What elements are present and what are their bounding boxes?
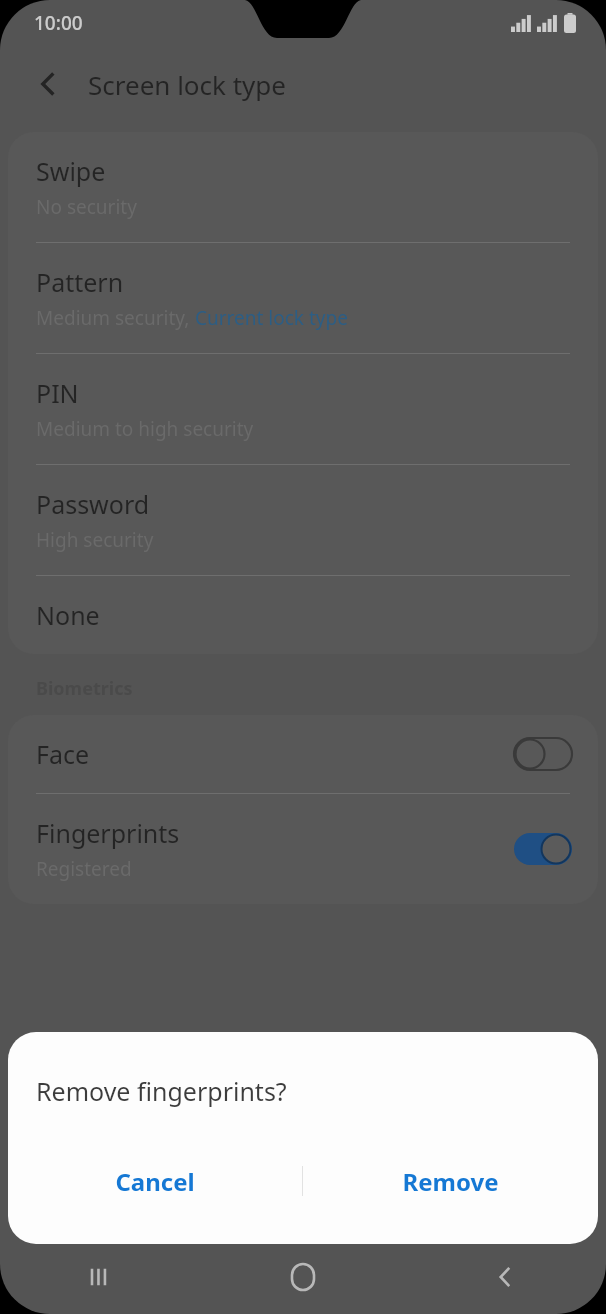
button[interactable]: Toggle on [514, 833, 572, 865]
staticText: Current lock type [195, 305, 348, 331]
staticText: Registered [36, 856, 132, 882]
button[interactable]: Fingerprints [8, 794, 598, 904]
button[interactable]: Pattern [8, 243, 598, 353]
staticText: Swipe [36, 154, 106, 188]
staticText: PIN [36, 376, 79, 410]
button[interactable]: PIN [8, 354, 598, 464]
button[interactable]: Face [8, 715, 598, 793]
button[interactable]: Home [272, 1246, 334, 1308]
button[interactable]: Swipe [8, 132, 598, 242]
staticText: None [36, 598, 100, 632]
staticText: Medium to high security [36, 416, 254, 442]
staticText: Screen lock type [88, 67, 286, 102]
button[interactable]: Recents [70, 1246, 132, 1308]
button[interactable]: Password [8, 465, 598, 575]
staticText: Remove fingerprints? [36, 1074, 287, 1108]
staticText: No security [36, 194, 137, 220]
staticText: Pattern [36, 265, 124, 299]
staticText: Biometrics [36, 676, 133, 701]
button[interactable]: Toggle off [514, 738, 572, 770]
staticText: Face [36, 737, 90, 771]
staticText: Remove [402, 1165, 499, 1198]
staticText: High security [36, 527, 154, 553]
staticText: Medium security, [36, 305, 195, 331]
button[interactable]: Cancel [8, 1148, 302, 1214]
button[interactable]: Remove [303, 1148, 598, 1214]
staticText: Cancel [115, 1165, 195, 1198]
button[interactable]: Back [474, 1246, 536, 1308]
staticText: Password [36, 487, 150, 521]
staticText: 10:00 [34, 10, 83, 36]
staticText: Fingerprints [36, 816, 180, 850]
button[interactable]: None [8, 576, 598, 654]
button[interactable]: Back [20, 56, 76, 112]
